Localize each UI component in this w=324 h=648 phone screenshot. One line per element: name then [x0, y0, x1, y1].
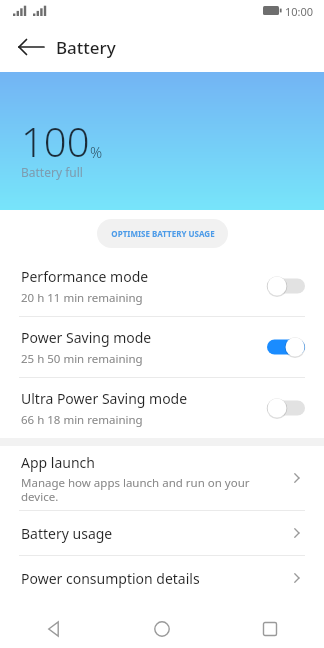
button[interactable]: On	[267, 336, 305, 358]
button[interactable]: Off	[267, 397, 305, 419]
staticText: Ultra Power Saving mode	[21, 389, 188, 408]
staticText: 10:00	[285, 4, 314, 19]
button[interactable]: Back	[0, 610, 108, 648]
staticText: Power consumption details	[21, 569, 200, 588]
staticText: 25 h 50 min remaining	[21, 351, 143, 367]
button[interactable]: Power consumption details	[0, 556, 324, 600]
button[interactable]: App launch	[0, 446, 324, 510]
button[interactable]: Battery usage	[0, 511, 324, 555]
button[interactable]: Performance mode	[0, 256, 324, 316]
staticText: OPTIMISE BATTERY USAGE	[111, 228, 215, 239]
staticText: Manage how apps launch and run on your d…	[21, 475, 250, 504]
staticText: Power Saving mode	[21, 328, 152, 347]
button[interactable]: Back	[16, 31, 48, 63]
button[interactable]: Home	[108, 610, 216, 648]
button[interactable]: Ultra Power Saving mode	[0, 378, 324, 438]
staticText: 20 h 11 min remaining	[21, 290, 143, 306]
staticText: 66 h 18 min remaining	[21, 412, 143, 428]
button[interactable]: OPTIMISE BATTERY USAGE	[97, 219, 228, 248]
staticText: Battery	[56, 36, 116, 59]
staticText: Battery full	[21, 164, 83, 180]
staticText: 100	[21, 114, 90, 168]
staticText: Battery usage	[21, 524, 113, 543]
staticText: Performance mode	[21, 267, 149, 286]
button[interactable]: Off	[267, 275, 305, 297]
staticText: App launch	[21, 453, 95, 472]
staticText: %	[90, 142, 103, 162]
button[interactable]: Power Saving mode	[0, 317, 324, 377]
button[interactable]: Recents	[216, 610, 324, 648]
